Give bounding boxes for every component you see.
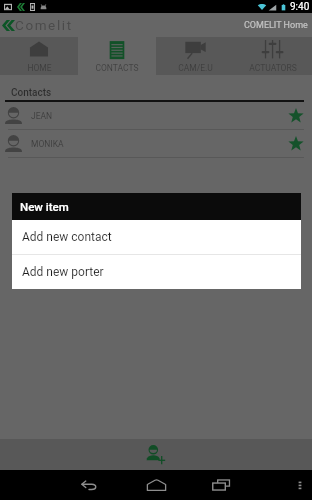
staticText: ACTUATORS xyxy=(249,63,297,73)
staticText: Add new porter xyxy=(22,265,104,279)
button[interactable]: Back xyxy=(74,470,104,500)
staticText: CAM/E.U xyxy=(178,63,213,73)
button[interactable]: Home xyxy=(141,470,171,500)
button[interactable]: Add contact xyxy=(141,440,171,470)
button[interactable]: CONTACTS xyxy=(78,37,156,75)
button[interactable]: ACTUATORS xyxy=(234,37,312,75)
staticText: Contacts xyxy=(11,87,52,99)
button[interactable]: MONIKA xyxy=(0,130,312,158)
button[interactable]: More options xyxy=(292,477,308,493)
button[interactable]: Add new contact xyxy=(12,220,301,254)
staticText: MONIKA xyxy=(31,139,64,149)
staticText: HOME xyxy=(27,63,52,73)
button[interactable]: HOME xyxy=(0,37,78,75)
staticText: JEAN xyxy=(31,111,53,121)
button[interactable]: Recent apps xyxy=(206,470,236,500)
staticText: Add new contact xyxy=(22,230,112,244)
staticText: CONTACTS xyxy=(95,63,139,73)
staticText: New item xyxy=(20,200,69,213)
staticText: Comelit xyxy=(15,17,73,33)
staticText: 9:40 xyxy=(290,1,310,13)
staticText: COMELIT Home xyxy=(244,20,308,31)
button[interactable]: JEAN xyxy=(0,102,312,130)
button[interactable]: Add new porter xyxy=(12,255,301,289)
button[interactable]: CAM/E.U xyxy=(156,37,234,75)
